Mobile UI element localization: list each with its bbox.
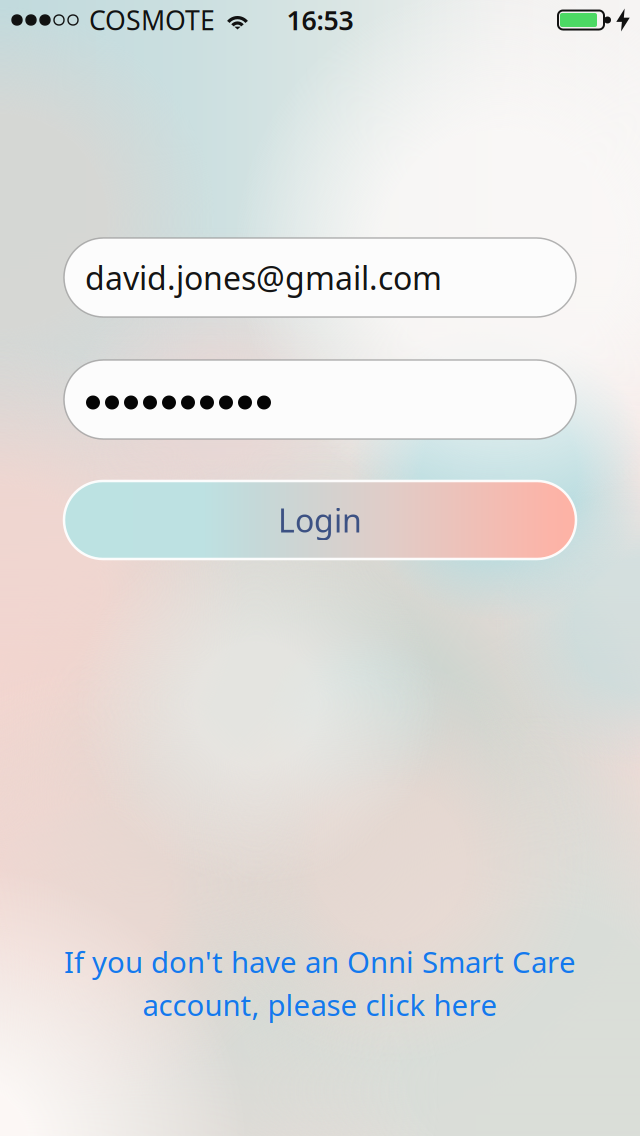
button[interactable]: Login xyxy=(64,481,576,559)
staticText: david.jones@gmail.com xyxy=(85,256,442,299)
staticText: account, please click here xyxy=(142,985,497,1024)
button[interactable] xyxy=(64,360,576,439)
button[interactable]: david.jones@gmail.com xyxy=(64,238,576,317)
button[interactable]: If you don't have an Onni Smart Care xyxy=(40,942,600,1024)
staticText: Login xyxy=(278,499,362,541)
staticText: 16:53 xyxy=(286,2,353,38)
staticText: If you don't have an Onni Smart Care xyxy=(64,942,576,981)
staticText: COSMOTE xyxy=(89,2,215,38)
